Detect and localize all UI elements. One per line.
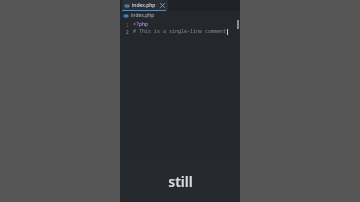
staticText: <?php xyxy=(133,21,149,28)
button[interactable]: Close tab xyxy=(159,2,166,9)
button[interactable]: index.php xyxy=(120,11,240,20)
staticText: index.php xyxy=(131,12,155,19)
staticText: # This is a single-line comment xyxy=(133,28,227,35)
staticText: still xyxy=(168,172,193,191)
staticText: index.php xyxy=(132,2,156,9)
staticText: 2 xyxy=(126,29,129,35)
staticText: 1 xyxy=(126,22,129,28)
button[interactable]: index.php xyxy=(122,0,168,11)
